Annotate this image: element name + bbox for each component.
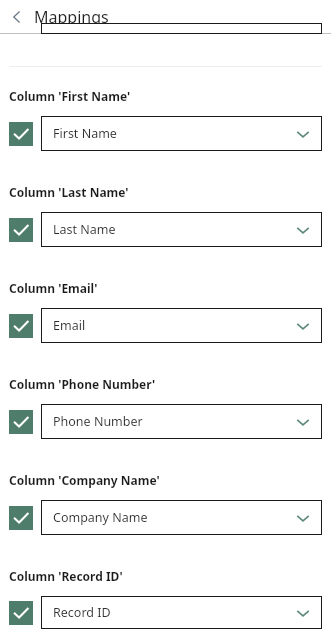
button[interactable]: Toggle column mapping [9, 601, 33, 625]
button[interactable]: Company Name [41, 500, 322, 535]
button[interactable]: Record ID [41, 596, 322, 629]
staticText: First Name [53, 125, 294, 142]
button[interactable]: Phone Number [41, 404, 322, 439]
staticText: Last Name [53, 221, 294, 238]
staticText: Column 'Record ID' [9, 568, 123, 584]
staticText: Email [53, 317, 294, 334]
button[interactable]: Toggle column mapping [9, 410, 33, 434]
button[interactable]: Toggle column mapping [9, 218, 33, 242]
staticText: Column 'First Name' [9, 88, 131, 104]
button[interactable]: Toggle column mapping [9, 314, 33, 338]
staticText: Record ID [53, 604, 294, 621]
button[interactable]: First Name [41, 116, 322, 151]
button[interactable]: Last Name [41, 212, 322, 247]
button[interactable]: Previous mapping dropdown [41, 23, 322, 34]
staticText: Column 'Company Name' [9, 472, 160, 488]
staticText: Mappings [34, 6, 109, 28]
button[interactable]: Toggle column mapping [9, 506, 33, 530]
button[interactable]: Back [0, 0, 34, 33]
button[interactable]: Email [41, 308, 322, 343]
staticText: Column 'Last Name' [9, 184, 129, 200]
staticText: Company Name [53, 509, 294, 526]
button[interactable]: Toggle column mapping [9, 122, 33, 146]
staticText: Column 'Phone Number' [9, 376, 156, 392]
staticText: Phone Number [53, 413, 294, 430]
staticText: Column 'Email' [9, 280, 98, 296]
